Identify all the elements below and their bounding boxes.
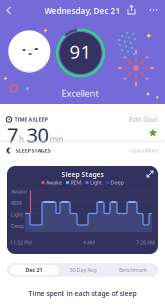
staticText: REM <box>70 179 81 186</box>
staticText: h <box>19 134 24 145</box>
staticText: Excellent <box>61 87 98 99</box>
staticText: Wednesday, Dec 21 <box>44 5 120 16</box>
staticText: Dec 21 <box>25 266 42 274</box>
staticText: min <box>49 134 63 145</box>
staticText: Sleep Stages <box>61 170 103 179</box>
button[interactable]: Edit Goal <box>129 115 158 124</box>
staticText: 91 <box>69 39 91 64</box>
staticText: Awake <box>46 179 62 186</box>
staticText: 30 Day Avg <box>69 266 96 274</box>
button[interactable]: More <box>148 5 159 15</box>
staticText: Light <box>11 211 23 218</box>
staticText: Benchmark <box>119 266 147 274</box>
staticText: REM <box>11 199 22 207</box>
staticText: Learn More <box>130 147 158 154</box>
staticText: SLEEP STAGES <box>15 147 50 154</box>
staticText: 7 <box>7 121 18 148</box>
button[interactable]: Dec 21 <box>10 265 58 275</box>
staticText: 11:32 PM <box>10 239 32 246</box>
staticText: Light <box>90 179 102 186</box>
staticText: Deep <box>110 179 123 186</box>
staticText: Deep <box>11 222 24 230</box>
staticText: Time spent in each stage of sleep <box>28 289 136 298</box>
button[interactable]: Learn More <box>130 147 158 154</box>
button[interactable]: 30 Day Avg <box>58 263 108 277</box>
staticText: Edit Goal <box>129 115 158 124</box>
button[interactable]: Share <box>127 5 136 15</box>
staticText: 7:28 AM <box>136 239 155 246</box>
button[interactable]: Benchmark <box>108 263 158 277</box>
staticText: TIME ASLEEP <box>14 116 47 123</box>
staticText: Awake <box>11 188 27 195</box>
button[interactable]: Back <box>5 5 13 16</box>
staticText: 30 <box>26 121 48 148</box>
button[interactable]: Expand chart <box>145 169 155 179</box>
staticText: 4 AM <box>83 239 95 246</box>
